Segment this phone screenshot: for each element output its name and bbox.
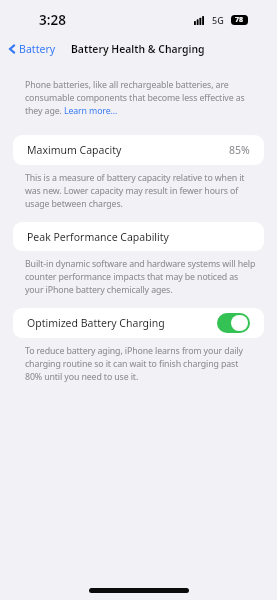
staticText: Peak Performance Capability	[27, 230, 169, 244]
button[interactable]: Phone batteries, like all rechargeable b…	[25, 79, 245, 117]
other: Cellular signal	[194, 16, 204, 25]
staticText: Phone batteries, like all rechargeable b…	[25, 79, 245, 117]
staticText: 85%	[229, 143, 250, 157]
staticText: Maximum Capacity	[27, 143, 122, 157]
staticText: This is a measure of battery capacity re…	[25, 172, 245, 210]
staticText: 3:28	[39, 11, 66, 29]
staticText: Battery	[19, 42, 56, 56]
button[interactable]: Back to Battery	[7, 42, 56, 56]
staticText: Built-in dynamic software and hardware s…	[25, 258, 256, 296]
staticText: Battery Health & Charging	[71, 42, 205, 56]
button[interactable]: Optimized Battery Charging	[13, 308, 264, 338]
button[interactable]: Maximum Capacity	[13, 135, 264, 165]
staticText: To reduce battery aging, iPhone learns f…	[25, 345, 243, 383]
button[interactable]: Peak Performance Capability	[13, 222, 264, 251]
staticText: 5G	[212, 14, 224, 26]
staticText: Optimized Battery Charging	[27, 316, 165, 330]
staticText: 78	[235, 15, 244, 25]
button[interactable]: Optimized Battery Charging switch	[217, 313, 250, 333]
